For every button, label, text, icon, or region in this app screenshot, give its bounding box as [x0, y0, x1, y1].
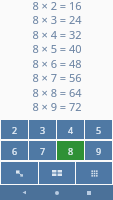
- button[interactable]: 8 × 2 = 16: [0, 0, 113, 13]
- button[interactable]: 8 × 8 = 64: [0, 85, 113, 100]
- staticText: 8: [68, 145, 74, 157]
- staticText: 8 × 6 = 48: [32, 56, 82, 71]
- staticText: 8 × 4 = 32: [32, 27, 82, 42]
- button[interactable]: Keypad: [76, 162, 112, 184]
- button[interactable]: 8 × 3 = 24: [0, 12, 113, 27]
- button[interactable]: 8: [57, 141, 84, 160]
- staticText: 9: [96, 145, 102, 157]
- staticText: 5: [96, 124, 102, 136]
- button[interactable]: 3: [29, 120, 56, 139]
- button[interactable]: 8 × 7 = 56: [0, 70, 113, 85]
- staticText: 8 × 5 = 40: [32, 41, 82, 56]
- staticText: 8 × 9 = 72: [32, 99, 82, 114]
- button[interactable]: 8 × 6 = 48: [0, 56, 113, 71]
- button[interactable]: 4: [57, 120, 84, 139]
- staticText: 3: [40, 124, 46, 136]
- button[interactable]: 8 × 9 = 72: [0, 99, 113, 114]
- staticText: 8 × 7 = 56: [32, 70, 82, 85]
- button[interactable]: 8 × 4 = 32: [0, 27, 113, 42]
- staticText: 4: [68, 124, 74, 136]
- button[interactable]: Table: [39, 162, 75, 184]
- button[interactable]: Home: [41, 186, 73, 199]
- button[interactable]: 8 × 5 = 40: [0, 41, 113, 56]
- button[interactable]: Recents: [73, 186, 105, 199]
- button[interactable]: Practice: [1, 162, 38, 184]
- button[interactable]: 2: [1, 120, 28, 139]
- button[interactable]: 9: [85, 141, 112, 160]
- staticText: 6: [12, 145, 18, 157]
- staticText: 8 × 3 = 24: [32, 12, 82, 27]
- staticText: 7: [40, 145, 46, 157]
- staticText: 8 × 2 = 16: [32, 0, 82, 13]
- button[interactable]: 7: [29, 141, 56, 160]
- staticText: 8 × 8 = 64: [32, 85, 82, 100]
- button[interactable]: 6: [1, 141, 28, 160]
- button[interactable]: 5: [85, 120, 112, 139]
- staticText: 2: [12, 124, 18, 136]
- button[interactable]: Back: [8, 186, 41, 199]
